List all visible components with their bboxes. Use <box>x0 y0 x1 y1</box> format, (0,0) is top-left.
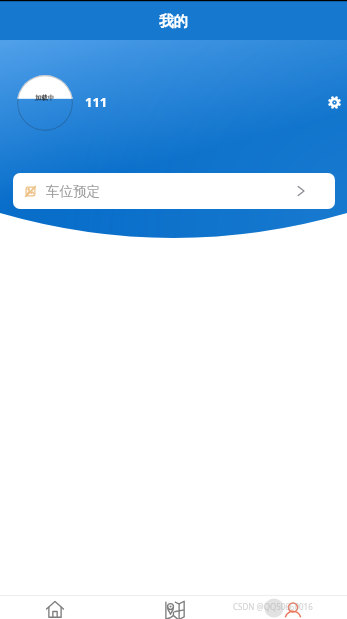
staticText: CSDN @QQ50660016 <box>233 601 313 612</box>
button[interactable]: Settings <box>322 90 346 114</box>
button[interactable]: Avatar <box>17 75 73 131</box>
staticText: 车位预定 <box>46 183 100 200</box>
staticText: 我的 <box>159 12 188 30</box>
button[interactable]: Home <box>32 595 78 619</box>
staticText: 111 <box>85 93 108 111</box>
button[interactable]: Map <box>151 595 197 619</box>
button[interactable]: Profile <box>270 595 316 619</box>
staticText: 加载中 <box>35 94 55 102</box>
button[interactable]: 车位预定 <box>13 173 335 209</box>
